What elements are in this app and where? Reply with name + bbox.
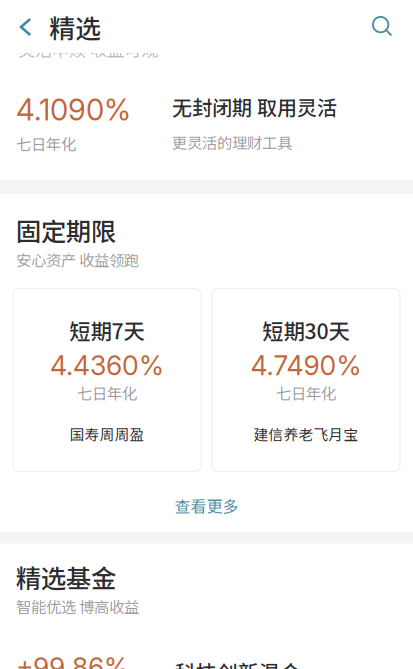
staticText: 科技创新混合 <box>175 656 301 669</box>
staticText: 智能优选 博高收益 <box>16 595 139 617</box>
staticText: 安心资产 收益领跑 <box>16 248 139 271</box>
staticText: 短期7天 <box>69 315 144 345</box>
staticText: 精选 <box>49 8 101 46</box>
button[interactable]: 查看更多 <box>0 493 413 519</box>
staticText: 灵活申赎 收益可观 <box>18 36 158 62</box>
staticText: 七日年化 <box>77 382 137 404</box>
staticText: 4.1090% <box>16 92 131 127</box>
button[interactable]: Back <box>10 0 41 44</box>
button[interactable]: 短期30天 <box>212 289 400 472</box>
button[interactable]: 短期7天 <box>13 289 201 472</box>
button[interactable]: Search <box>371 0 413 44</box>
staticText: 查看更多 <box>174 494 238 517</box>
staticText: 更灵活的理财工具 <box>172 131 292 153</box>
staticText: 4.4360% <box>50 349 164 382</box>
staticText: 短期30天 <box>262 315 349 345</box>
staticText: +99.86% <box>16 651 129 669</box>
staticText: 建信养老飞月宝 <box>253 423 358 444</box>
staticText: 国寿周周盈 <box>69 423 144 444</box>
staticText: 4.7490% <box>250 349 361 382</box>
staticText: 固定期限 <box>16 212 116 248</box>
staticText: 七日年化 <box>16 132 76 155</box>
staticText: 无封闭期 取用灵活 <box>172 92 337 121</box>
staticText: 精选基金 <box>16 559 116 595</box>
staticText: 七日年化 <box>276 382 336 404</box>
